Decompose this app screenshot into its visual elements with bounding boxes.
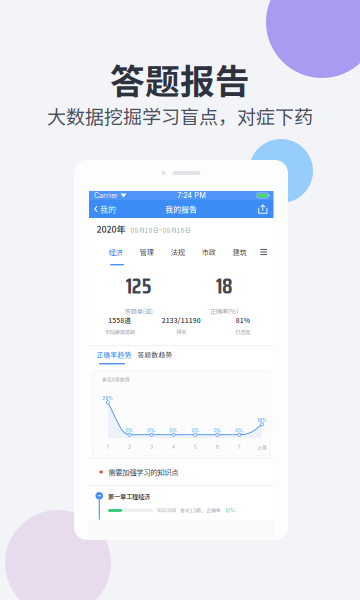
staticText: 5: [194, 444, 197, 450]
staticText: 0%: [169, 428, 177, 433]
staticText: 建筑: [233, 247, 247, 257]
staticText: 已击败: [235, 328, 250, 336]
button[interactable]: Share: [252, 200, 273, 218]
button[interactable]: 管理: [131, 240, 162, 264]
staticText: 第一章工程经济: [108, 492, 150, 501]
button[interactable]: 建筑: [224, 240, 255, 264]
staticText: 排名: [176, 328, 186, 336]
staticText: 大数据挖掘学习盲点，对症下药: [47, 102, 313, 130]
staticText: 2133/11190: [162, 315, 201, 325]
staticText: 答题量(道): [125, 307, 153, 316]
button[interactable]: More categories: [255, 241, 272, 262]
staticText: 29%: [102, 395, 113, 401]
staticText: 3: [150, 444, 153, 450]
staticText: 0%: [213, 428, 221, 433]
staticText: 0%: [191, 428, 199, 433]
staticText: 市政: [202, 247, 216, 257]
staticText: 答题报告: [110, 54, 250, 104]
button[interactable]: 法规: [162, 240, 193, 264]
staticText: Carrier: [94, 191, 118, 200]
staticText: 2020年: [96, 223, 125, 235]
staticText: 7: [238, 444, 241, 450]
staticText: 12%: [225, 507, 235, 513]
staticText: 最近8周数据: [102, 376, 130, 383]
staticText: 我的: [100, 203, 116, 215]
staticText: 需要加强学习的知识点: [108, 467, 178, 477]
staticText: 125: [126, 269, 152, 303]
staticText: 全站最高答题: [105, 328, 135, 336]
staticText: 上周: [257, 444, 267, 451]
staticText: 4: [172, 444, 175, 450]
staticText: 经济: [109, 247, 123, 257]
staticText: 答题数趋势: [137, 350, 172, 359]
button[interactable]: 经济: [100, 240, 131, 264]
staticText: 0%: [235, 428, 243, 433]
staticText: 0%: [148, 428, 156, 433]
staticText: 100/358: [157, 507, 176, 513]
staticText: 18%: [257, 417, 267, 423]
button[interactable]: 我的: [89, 200, 124, 218]
staticText: 管理: [140, 247, 154, 257]
staticText: 6: [216, 444, 219, 450]
staticText: 法规: [171, 247, 185, 257]
staticText: 2: [128, 444, 131, 450]
staticText: 08月10日~08月16日: [130, 225, 190, 235]
staticText: 正确率趋势: [96, 350, 131, 359]
staticText: 0%: [126, 428, 134, 433]
staticText: 答对13题，正确率: [180, 507, 221, 514]
staticText: 1558道: [108, 315, 131, 325]
staticText: 7:24 PM: [177, 191, 206, 200]
button[interactable]: 正确率趋势: [96, 350, 131, 359]
staticText: 1: [107, 444, 109, 450]
staticText: 我的报告: [165, 203, 197, 215]
staticText: 81%: [236, 315, 250, 325]
button[interactable]: 市政: [193, 240, 224, 264]
staticText: 正确率(%): [210, 307, 238, 316]
button[interactable]: 答题数趋势: [137, 350, 172, 359]
staticText: 18: [216, 269, 232, 303]
